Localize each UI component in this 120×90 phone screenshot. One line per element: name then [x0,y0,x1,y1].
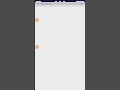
button[interactable]: Profile [35,18,39,22]
button[interactable]: Profile [35,45,39,49]
button[interactable] [35,2,85,5]
